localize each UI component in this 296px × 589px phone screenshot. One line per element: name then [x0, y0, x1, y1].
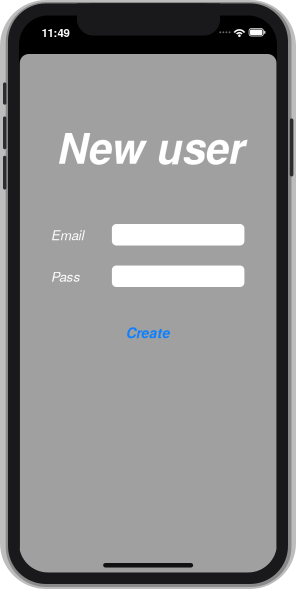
button[interactable]: Email [112, 224, 244, 245]
button[interactable]: Pass [112, 265, 244, 287]
staticText: 11:49 [41, 24, 69, 40]
staticText: Create [126, 322, 170, 342]
staticText: Email [52, 225, 85, 244]
staticText: New user [58, 116, 245, 177]
button[interactable]: Create [20, 326, 276, 339]
staticText: Pass [52, 267, 81, 286]
